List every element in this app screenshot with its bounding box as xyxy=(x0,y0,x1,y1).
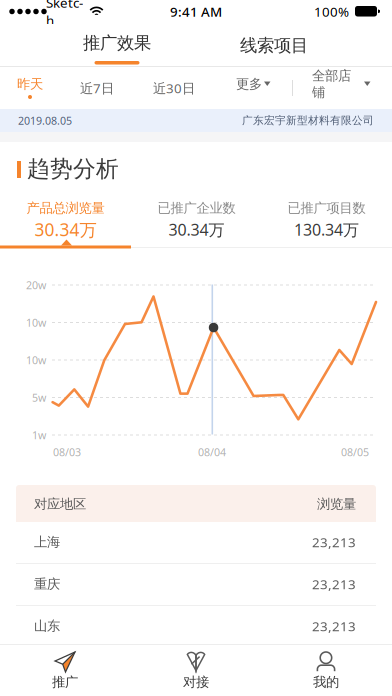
staticText: 全部店铺 xyxy=(312,68,351,100)
staticText: 趋势分析 xyxy=(27,155,119,183)
staticText: 近7日 xyxy=(80,79,114,97)
button[interactable]: 推广效果 xyxy=(52,24,182,67)
staticText: 对应地区 xyxy=(34,496,86,512)
staticText: 已推广项目数 xyxy=(287,200,365,216)
button[interactable]: 上海 xyxy=(16,522,376,564)
staticText: 推广 xyxy=(52,674,78,690)
staticText: 重庆 xyxy=(34,576,60,592)
button[interactable]: 更多 xyxy=(236,67,274,109)
staticText: 5w xyxy=(32,390,46,405)
staticText: 近30日 xyxy=(153,79,195,97)
staticText: Sketch xyxy=(46,0,83,29)
staticText: 对接 xyxy=(183,674,209,690)
staticText: 23,213 xyxy=(312,575,356,593)
staticText: 我的 xyxy=(313,674,339,690)
staticText: 上海 xyxy=(34,534,60,550)
staticText: 10w xyxy=(26,353,46,367)
staticText: 23,213 xyxy=(312,533,356,551)
button[interactable]: 重庆 xyxy=(16,564,376,606)
button[interactable]: 全部店铺 xyxy=(312,67,374,109)
staticText: 10w xyxy=(26,315,46,330)
staticText: 已推广企业数 xyxy=(157,200,235,216)
staticText: 100% xyxy=(314,3,349,20)
staticText: 推广效果 xyxy=(83,32,151,54)
staticText: 线索项目 xyxy=(240,35,308,56)
button[interactable]: 我的 xyxy=(261,644,391,696)
staticText: 130.34万 xyxy=(294,219,359,240)
staticText: 23,213 xyxy=(312,617,356,635)
staticText: 08/05 xyxy=(341,445,369,459)
staticText: 山东 xyxy=(34,618,60,634)
button[interactable]: 已推广项目数 xyxy=(261,190,392,246)
button[interactable]: 产品总浏览量 xyxy=(0,190,131,246)
staticText: 2019.08.05 xyxy=(18,113,72,128)
staticText: 广东宏宇新型材料有限公司 xyxy=(242,114,374,127)
button[interactable]: 山东 xyxy=(16,606,376,648)
staticText: 浏览量 xyxy=(317,496,356,512)
staticText: 昨天 xyxy=(17,76,43,92)
staticText: 1w xyxy=(32,428,46,442)
staticText: 30.34万 xyxy=(168,219,224,240)
staticText: 08/04 xyxy=(198,445,226,459)
staticText: 更多 xyxy=(236,76,262,92)
staticText: 20w xyxy=(26,278,46,292)
button[interactable]: 昨天 xyxy=(0,67,62,109)
button[interactable]: 近30日 xyxy=(139,67,209,109)
button[interactable]: 已推广企业数 xyxy=(131,190,262,246)
staticText: 30.34万 xyxy=(34,218,96,241)
staticText: 产品总浏览量 xyxy=(26,200,104,216)
staticText: 08/03 xyxy=(53,445,81,459)
button[interactable]: 对接 xyxy=(131,644,261,696)
button[interactable]: 推广 xyxy=(0,644,130,696)
button[interactable]: 线索项目 xyxy=(209,24,339,67)
staticText: 9:41 AM xyxy=(170,3,222,20)
button[interactable]: 近7日 xyxy=(65,67,129,109)
